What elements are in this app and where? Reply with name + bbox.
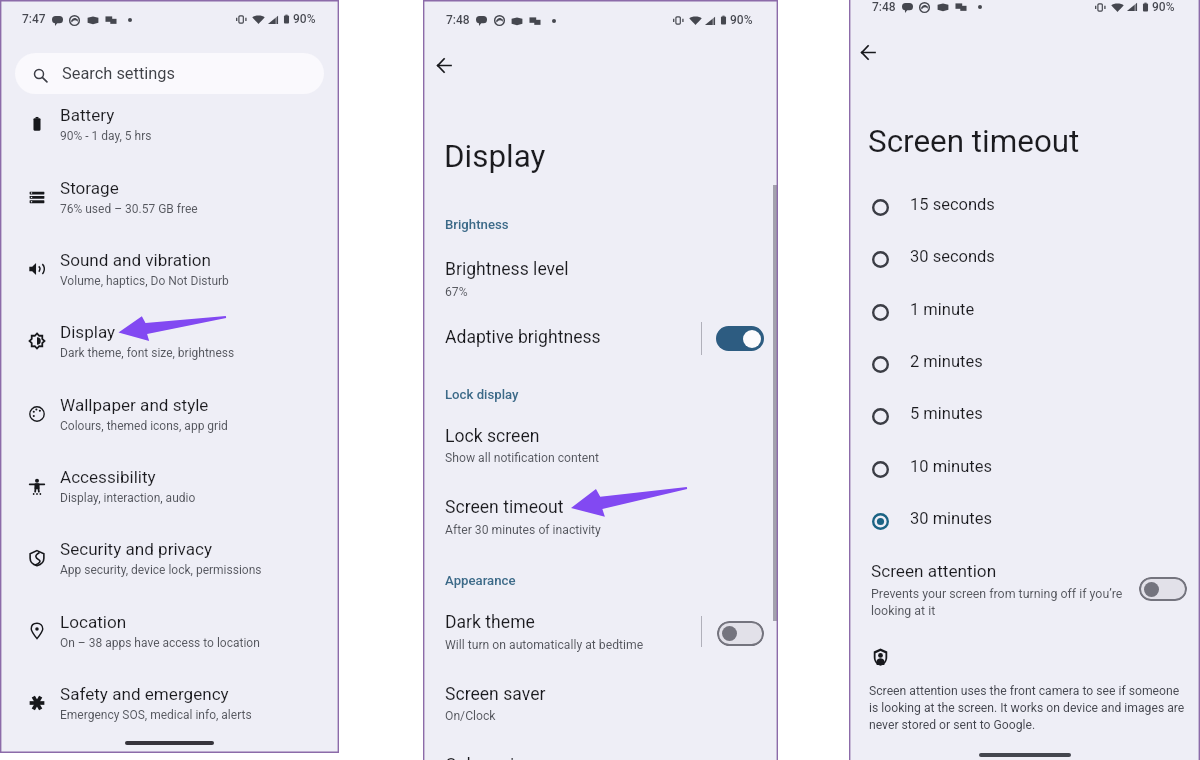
button[interactable]: 5 minutes: [849, 390, 1200, 442]
button[interactable]: 30 seconds: [849, 233, 1200, 285]
staticText: 1 minute: [910, 300, 975, 319]
button[interactable]: Brightness level: [423, 252, 778, 306]
button[interactable]: Storage: [0, 159, 339, 225]
staticText: Dark theme, font size, brightness: [60, 346, 235, 360]
staticText: 67%: [445, 285, 468, 299]
button[interactable]: Back: [850, 34, 887, 71]
staticText: 76% used – 30.57 GB free: [60, 202, 198, 216]
staticText: looking at it: [871, 603, 936, 618]
staticText: is looking at the screen. It works on de…: [869, 701, 1185, 715]
button[interactable]: Sound and vibration: [0, 231, 339, 297]
button[interactable]: Accessibility: [0, 448, 339, 514]
staticText: Screen attention uses the front camera t…: [869, 684, 1180, 698]
button[interactable]: Battery: [0, 86, 339, 152]
staticText: Accessibility: [60, 467, 156, 487]
staticText: Colours in screen saver: [445, 755, 628, 760]
button[interactable]: Dark theme: [423, 606, 700, 662]
staticText: Storage: [60, 178, 119, 198]
staticText: 30 minutes: [910, 509, 992, 528]
staticText: Display, interaction, audio: [60, 491, 196, 505]
button[interactable]: Colours in screen saver: [423, 748, 778, 760]
staticText: Screen timeout: [445, 497, 564, 518]
staticText: Safety and emergency: [60, 684, 229, 704]
staticText: 90%: [293, 12, 316, 26]
button[interactable]: Screen timeout: [423, 488, 778, 542]
button[interactable]: Back: [426, 47, 463, 84]
staticText: Prevents your screen from turning off if…: [871, 586, 1123, 601]
staticText: On – 38 apps have access to location: [60, 636, 260, 650]
staticText: Brightness: [445, 217, 509, 232]
staticText: Will turn on automatically at bedtime: [445, 638, 644, 652]
staticText: Search settings: [62, 64, 175, 83]
staticText: Location: [60, 612, 127, 632]
staticText: Display: [444, 138, 546, 175]
staticText: Emergency SOS, medical info, alerts: [60, 708, 252, 722]
staticText: After 30 minutes of inactivity: [445, 523, 601, 537]
staticText: Wallpaper and style: [60, 395, 209, 415]
staticText: App security, device lock, permissions: [60, 563, 262, 577]
button[interactable]: 1 minute: [849, 286, 1200, 338]
button[interactable]: 30 minutes: [849, 495, 1200, 547]
staticText: Volume, haptics, Do Not Disturb: [60, 274, 229, 288]
staticText: 15 seconds: [910, 195, 995, 214]
staticText: Brightness level: [445, 259, 569, 280]
staticText: Lock screen: [445, 426, 540, 447]
staticText: 30 seconds: [910, 247, 995, 266]
button[interactable]: 15 seconds: [849, 181, 1200, 233]
staticText: Screen attention: [871, 561, 997, 581]
staticText: 2 minutes: [910, 352, 983, 371]
staticText: Colours, themed icons, app grid: [60, 419, 228, 433]
button[interactable]: Adaptive brightness: [423, 315, 693, 363]
button[interactable]: Safety and emergency: [0, 665, 339, 731]
button[interactable]: Display: [0, 303, 339, 369]
button[interactable]: Screen saver: [423, 676, 778, 730]
staticText: Adaptive brightness: [445, 327, 601, 348]
staticText: 10 minutes: [910, 457, 992, 476]
staticText: Screen saver: [445, 684, 546, 705]
button[interactable]: 10 minutes: [849, 443, 1200, 495]
staticText: Security and privacy: [60, 539, 213, 559]
staticText: Dark theme: [445, 612, 535, 633]
staticText: 5 minutes: [910, 404, 983, 423]
staticText: On/Clock: [445, 709, 496, 723]
button[interactable]: Screen attention: [849, 556, 1130, 630]
staticText: 90%: [1152, 0, 1175, 14]
button[interactable]: Security and privacy: [0, 520, 339, 586]
button[interactable]: Dark theme toggle: [717, 621, 764, 646]
button[interactable]: Adaptive brightness toggle: [716, 326, 764, 351]
staticText: Appearance: [445, 573, 516, 588]
staticText: Screen timeout: [868, 123, 1080, 160]
button[interactable]: 2 minutes: [849, 338, 1200, 390]
staticText: 7:47: [22, 12, 46, 26]
staticText: Battery: [60, 105, 115, 125]
staticText: 7:48: [872, 0, 896, 14]
staticText: Display: [60, 322, 116, 342]
staticText: 90% - 1 day, 5 hrs: [60, 129, 152, 143]
staticText: 7:48: [446, 13, 470, 27]
staticText: Lock display: [445, 387, 519, 402]
button[interactable]: Wallpaper and style: [0, 376, 339, 442]
button[interactable]: Screen attention toggle: [1139, 577, 1187, 601]
button[interactable]: Lock screen: [423, 420, 778, 474]
button[interactable]: Location: [0, 593, 339, 659]
staticText: 90%: [730, 13, 753, 27]
staticText: never stored or sent to Google.: [869, 718, 1036, 732]
staticText: Sound and vibration: [60, 250, 211, 270]
button[interactable]: Search settings: [15, 53, 324, 94]
staticText: Show all notification content: [445, 451, 599, 465]
